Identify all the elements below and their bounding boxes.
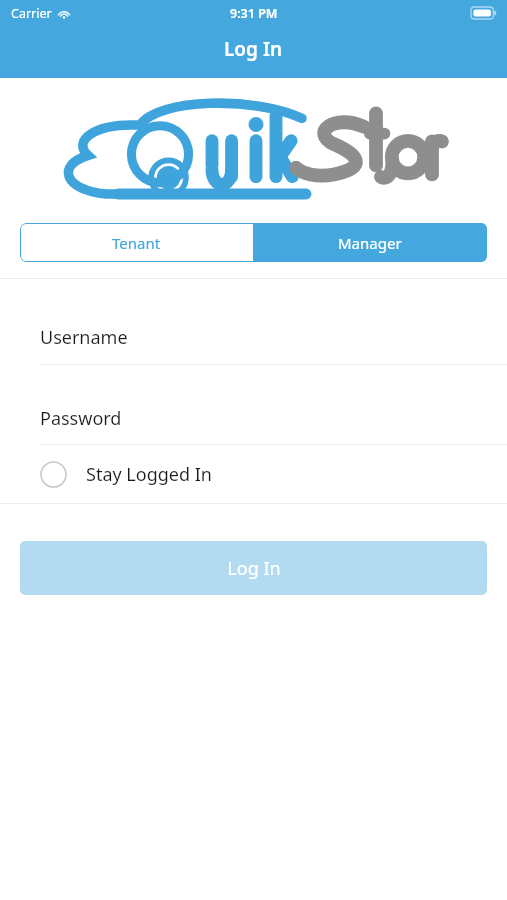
staticText: Password [40, 406, 122, 431]
staticText: Stay Logged In [86, 462, 212, 487]
button[interactable]: Log In [20, 541, 487, 595]
staticText: Manager [338, 233, 402, 253]
button[interactable]: Stay Logged In [40, 445, 487, 503]
staticText: 9:31 PM [230, 5, 278, 22]
button[interactable]: Manager [253, 223, 487, 262]
staticText: Log In [224, 36, 283, 62]
staticText: Log In [227, 556, 281, 581]
button[interactable]: Password [40, 406, 487, 431]
staticText: Tenant [112, 233, 161, 253]
button[interactable]: Username [40, 325, 487, 350]
staticText: Carrier [11, 5, 52, 22]
button[interactable]: Tenant [20, 223, 253, 262]
staticText: Username [40, 325, 128, 350]
